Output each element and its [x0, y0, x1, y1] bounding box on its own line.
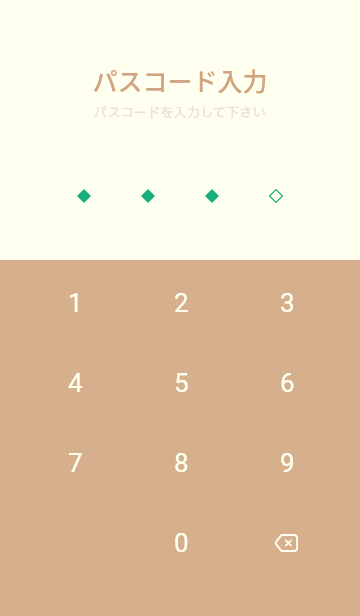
staticText: 7	[68, 448, 83, 478]
button[interactable]: 1	[22, 263, 128, 343]
button[interactable]: 0	[128, 503, 234, 583]
staticText: パスコードを入力して下さい	[94, 103, 266, 122]
button[interactable]: 9	[234, 423, 340, 503]
staticText: 3	[280, 288, 295, 318]
button[interactable]: Backspace	[234, 503, 340, 583]
staticText: 0	[174, 528, 189, 558]
other: Backspace	[274, 534, 298, 552]
staticText: パスコード入力	[92, 62, 268, 98]
button[interactable]: 8	[128, 423, 234, 503]
button[interactable]: 2	[128, 263, 234, 343]
button[interactable]: 3	[234, 263, 340, 343]
staticText: 1	[68, 288, 83, 318]
button[interactable]: 7	[22, 423, 128, 503]
staticText: 6	[280, 368, 295, 398]
button[interactable]: 4	[22, 343, 128, 423]
staticText: 2	[174, 288, 189, 318]
staticText: 4	[68, 368, 83, 398]
staticText: 9	[280, 448, 295, 478]
staticText: 5	[174, 368, 189, 398]
staticText: 8	[174, 448, 189, 478]
button[interactable]: 5	[128, 343, 234, 423]
button[interactable]: 6	[234, 343, 340, 423]
